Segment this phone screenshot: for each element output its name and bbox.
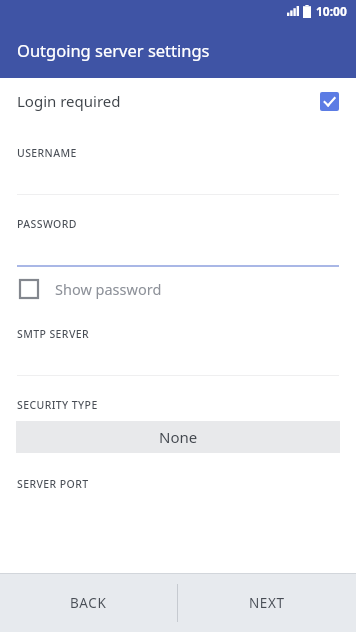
staticText: Login required	[17, 91, 121, 111]
staticText: SMTP SERVER	[17, 327, 90, 341]
button[interactable]: None	[16, 421, 340, 453]
staticText: SECURITY TYPE	[17, 398, 98, 412]
staticText: BACK	[70, 594, 107, 612]
staticText: NEXT	[249, 594, 285, 612]
button[interactable]: BACK	[0, 574, 177, 632]
button[interactable]: Login required	[0, 78, 356, 124]
button[interactable]: Show password	[0, 267, 356, 311]
staticText: SERVER PORT	[17, 477, 89, 491]
staticText: Show password	[55, 279, 162, 299]
staticText: Outgoing server settings	[17, 39, 210, 61]
staticText: 10:00	[316, 3, 347, 19]
staticText: None	[159, 427, 198, 447]
staticText: PASSWORD	[17, 217, 77, 231]
staticText: USERNAME	[17, 146, 77, 160]
button[interactable]: NEXT	[178, 574, 356, 632]
